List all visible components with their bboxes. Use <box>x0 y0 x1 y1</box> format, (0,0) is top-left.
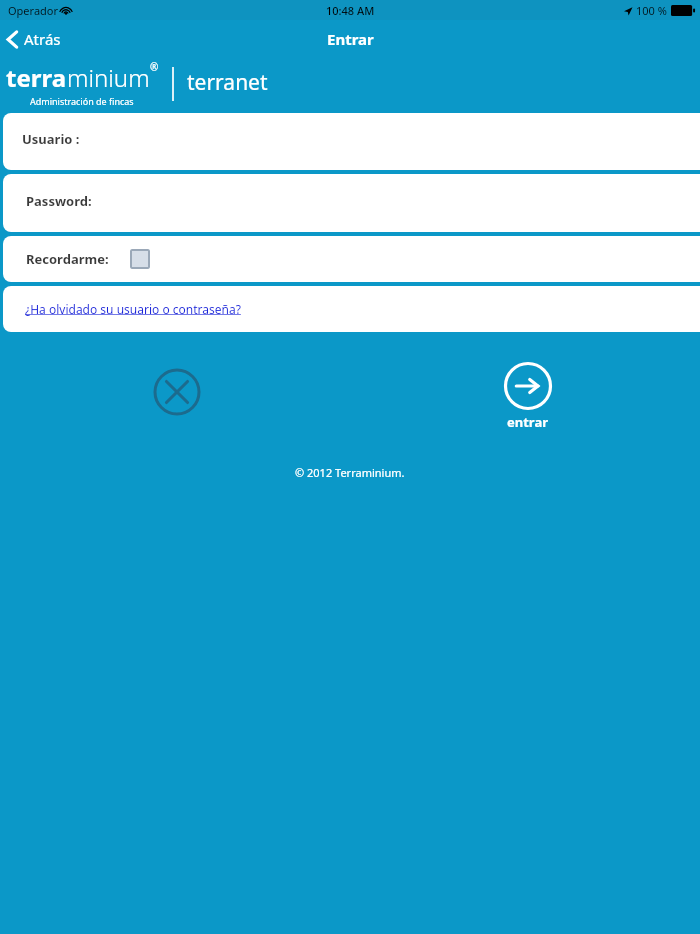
button[interactable]: Usuario : <box>3 113 700 170</box>
staticText: Recordarme: <box>26 250 109 268</box>
staticText: Administración de fincas <box>30 95 134 107</box>
button[interactable]: Recordarme <box>130 249 150 269</box>
staticText: terra <box>6 61 67 94</box>
staticText: Atrás <box>24 29 61 49</box>
button[interactable]: Password: <box>3 174 700 232</box>
staticText: © 2012 Terraminium. <box>295 465 405 480</box>
button[interactable]: ¿Ha olvidado su usuario o contraseña? <box>3 286 700 332</box>
button[interactable]: entrar <box>503 361 553 431</box>
staticText: Password: <box>26 192 92 210</box>
staticText: minium <box>67 61 150 94</box>
staticText: terranet <box>187 68 268 97</box>
staticText: Usuario : <box>22 130 80 148</box>
staticText: ® <box>150 60 159 74</box>
staticText: entrar <box>507 413 549 431</box>
staticText: Entrar <box>327 29 374 49</box>
staticText: 100 % <box>636 3 667 18</box>
button[interactable]: Atrás <box>0 25 71 53</box>
staticText: 10:48 AM <box>326 3 375 18</box>
staticText: Operador <box>8 3 59 18</box>
button[interactable]: Cancelar <box>152 367 202 417</box>
button[interactable]: Recordarme: <box>3 236 700 282</box>
staticText: ¿Ha olvidado su usuario o contraseña? <box>25 301 241 317</box>
